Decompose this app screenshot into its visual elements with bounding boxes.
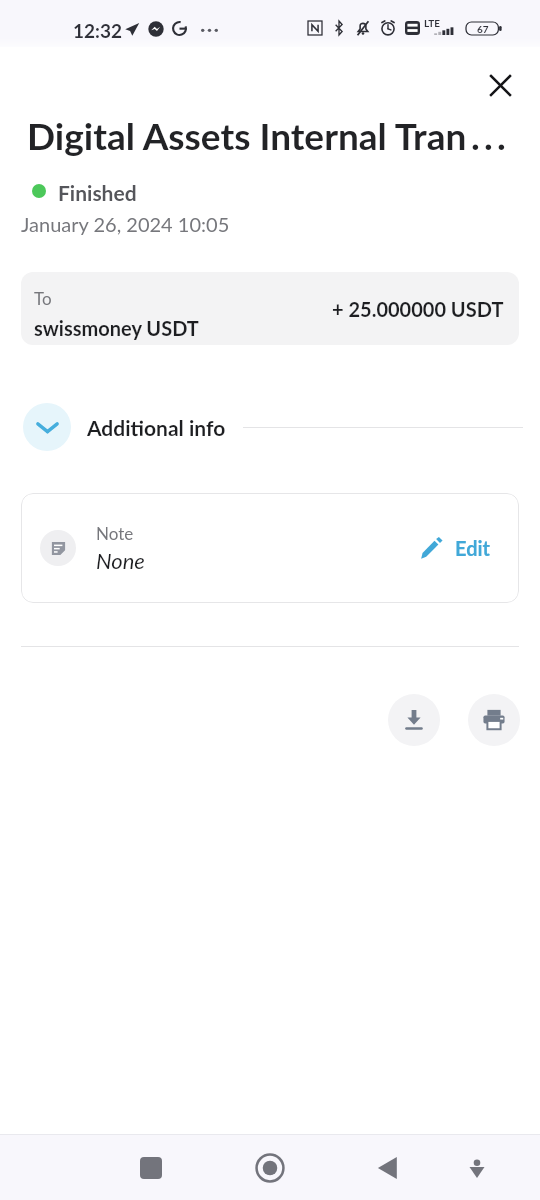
staticText: ... (471, 113, 510, 157)
button[interactable]: To (21, 272, 519, 345)
button[interactable]: Hide keyboard (454, 1145, 500, 1191)
staticText: 67 (477, 23, 489, 35)
staticText: swissmoney USDT (34, 316, 199, 340)
staticText: To (34, 288, 52, 308)
staticText: + 25.000000 USDT (332, 297, 504, 321)
staticText: Note (96, 523, 134, 543)
button[interactable]: Close (477, 62, 524, 109)
staticText: January 26, 2024 10:05 (21, 212, 230, 236)
staticText: None (96, 547, 145, 573)
staticText: Finished (58, 180, 137, 202)
staticText: Edit (455, 536, 491, 560)
button[interactable]: Edit (416, 532, 495, 564)
button[interactable]: Additional info (23, 403, 523, 451)
staticText: Additional info (87, 415, 226, 440)
button[interactable]: Print (468, 694, 520, 746)
button[interactable]: Home (247, 1145, 293, 1191)
button[interactable]: Finished (32, 180, 137, 202)
staticText: Digital Assets Internal Tran (27, 113, 467, 157)
staticText: LTE (424, 17, 441, 29)
button[interactable]: Download (388, 694, 440, 746)
button[interactable]: Recents (128, 1145, 174, 1191)
button[interactable]: Back (365, 1145, 411, 1191)
staticText: 12:32 (73, 19, 122, 42)
